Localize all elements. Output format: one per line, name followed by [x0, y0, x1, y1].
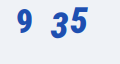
staticText: 9 — [16, 2, 33, 41]
staticText: 5 — [70, 0, 88, 42]
staticText: 3 — [50, 5, 68, 47]
